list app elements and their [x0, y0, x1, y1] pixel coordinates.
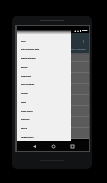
- staticText: Length: [21, 92, 28, 95]
- staticText: Energy: [21, 66, 28, 69]
- button[interactable]: Back: [31, 143, 37, 149]
- staticText: Energy: [21, 66, 28, 69]
- staticText: Speed: [21, 127, 27, 130]
- button[interactable]: Plane Angle: [17, 107, 71, 116]
- button[interactable]: Digital Storage: [17, 54, 71, 63]
- staticText: Temperature: [21, 136, 34, 139]
- button[interactable]: [17, 62, 89, 73]
- button[interactable]: Frequency: [17, 72, 71, 81]
- button[interactable]: Energy: [17, 63, 71, 72]
- button[interactable]: Mass: [17, 98, 71, 107]
- button[interactable]: Length: [17, 89, 71, 98]
- staticText: Mass: [21, 101, 26, 104]
- button[interactable]: Speed: [17, 124, 71, 133]
- button[interactable]: Recent apps: [69, 143, 75, 149]
- button[interactable]: More options: [81, 39, 85, 44]
- staticText: Fuel Economy: [21, 83, 35, 86]
- button[interactable]: [17, 106, 89, 117]
- button[interactable]: Fuel Economy: [17, 80, 71, 89]
- button[interactable]: Area: [17, 37, 71, 46]
- staticText: Length: [21, 92, 28, 95]
- button[interactable]: [17, 55, 89, 62]
- staticText: Data Transfer Rate: [21, 48, 40, 51]
- staticText: Pressure: [21, 118, 30, 121]
- button[interactable]: [17, 128, 89, 139]
- staticText: Mass: [21, 101, 26, 104]
- button[interactable]: Home: [50, 143, 56, 149]
- staticText: Fuel Economy: [21, 83, 35, 86]
- staticText: Area: [21, 40, 26, 43]
- staticText: Speed: [21, 127, 27, 130]
- staticText: Plane Angle: [21, 110, 33, 113]
- staticText: Area: [21, 40, 26, 43]
- staticText: Digital Storage: [21, 57, 36, 60]
- staticText: Digital Storage: [21, 57, 36, 60]
- button[interactable]: [17, 73, 89, 84]
- staticText: Temperature: [21, 136, 34, 139]
- button[interactable]: Pressure: [17, 115, 71, 124]
- button[interactable]: Temperature: [17, 133, 71, 142]
- staticText: Frequency: [21, 75, 32, 78]
- staticText: Plane Angle: [21, 110, 33, 113]
- button[interactable]: [17, 117, 89, 128]
- staticText: Pressure: [21, 118, 30, 121]
- staticText: Data Transfer Rate: [21, 48, 40, 51]
- button[interactable]: Data Transfer Rate: [17, 45, 71, 54]
- staticText: 12:30: [82, 29, 88, 32]
- staticText: DIGITAL STORAGE: [67, 48, 86, 51]
- button[interactable]: [17, 84, 89, 95]
- button[interactable]: [17, 95, 89, 106]
- staticText: Frequency: [21, 75, 32, 78]
- staticText: 12:30: [82, 29, 88, 32]
